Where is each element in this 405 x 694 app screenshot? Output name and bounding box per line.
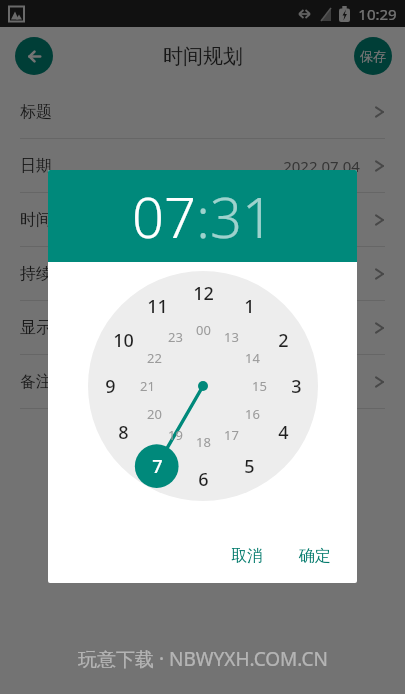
- staticText: 7: [152, 454, 163, 479]
- staticText: 00: [196, 321, 211, 339]
- staticText: 11: [147, 294, 168, 319]
- button[interactable]: 保存: [354, 37, 392, 75]
- staticText: 9: [105, 374, 116, 399]
- staticText: 15: [252, 377, 267, 395]
- button[interactable]: 07: [132, 178, 196, 254]
- button[interactable]: 显示: [0, 301, 405, 355]
- staticText: 22: [147, 349, 162, 367]
- staticText: 20: [147, 405, 162, 423]
- button[interactable]: 12: [88, 271, 318, 501]
- staticText: 时间规划: [163, 44, 243, 69]
- staticText: 取消: [231, 546, 263, 566]
- staticText: 5: [244, 454, 255, 479]
- staticText: 显示: [20, 318, 52, 338]
- staticText: 17: [224, 426, 239, 444]
- staticText: 确定: [299, 546, 331, 566]
- staticText: 1: [244, 294, 255, 319]
- button[interactable]: 标题: [0, 85, 405, 139]
- staticText: 2022.07.04: [283, 156, 360, 176]
- staticText: 6: [198, 467, 209, 492]
- staticText: 10: [113, 328, 134, 353]
- button[interactable]: Back: [15, 37, 53, 75]
- staticText: 4: [278, 420, 289, 445]
- staticText: 21: [140, 377, 155, 395]
- staticText: 保存: [360, 48, 386, 64]
- staticText: 日期: [20, 156, 52, 176]
- staticText: 标题: [20, 102, 52, 122]
- staticText: 时间: [20, 210, 52, 230]
- staticText: 8: [118, 420, 129, 445]
- button[interactable]: 持续: [0, 247, 405, 301]
- button[interactable]: 确定: [289, 540, 341, 572]
- button[interactable]: 日期: [0, 139, 405, 193]
- button[interactable]: 时间: [0, 193, 405, 247]
- staticText: 23: [168, 328, 183, 346]
- button[interactable]: 取消: [221, 540, 273, 572]
- button[interactable]: 备注: [0, 355, 405, 409]
- staticText: 07: [132, 178, 196, 254]
- staticText: 14: [245, 349, 260, 367]
- staticText: 12: [193, 281, 214, 306]
- staticText: 10:29: [358, 4, 397, 24]
- staticText: 19: [168, 426, 183, 444]
- staticText: :: [196, 178, 210, 254]
- staticText: 18: [196, 433, 211, 451]
- staticText: 玩意下载 · NBWYXH.COM.CN: [78, 646, 328, 672]
- staticText: 备注: [20, 372, 52, 392]
- button[interactable]: 31: [210, 178, 274, 254]
- staticText: 2: [278, 328, 289, 353]
- staticText: 持续: [20, 264, 52, 284]
- staticText: 31: [210, 178, 274, 254]
- staticText: 16: [245, 405, 260, 423]
- staticText: 3: [291, 374, 302, 399]
- staticText: 13: [224, 328, 239, 346]
